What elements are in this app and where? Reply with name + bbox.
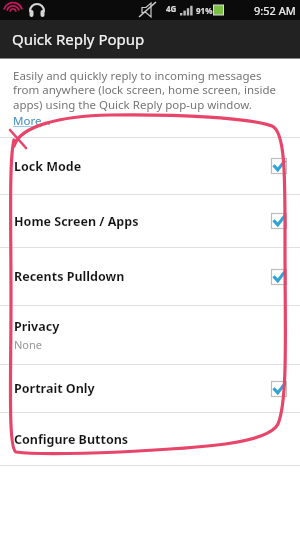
button[interactable]: Lock Mode checkbox: [271, 158, 287, 174]
button[interactable]: More...: [13, 113, 51, 129]
button[interactable]: Privacy: [0, 306, 300, 364]
staticText: Privacy: [14, 318, 60, 335]
button[interactable]: Portrait Only: [0, 365, 300, 412]
button[interactable]: Recents Pulldown: [0, 248, 300, 305]
staticText: Configure Buttons: [14, 431, 129, 448]
staticText: 9:52 AM: [254, 3, 296, 18]
staticText: 91%: [196, 5, 213, 16]
button[interactable]: Configure Buttons: [0, 413, 300, 465]
staticText: Easily and quickly reply to incoming mes…: [13, 68, 277, 113]
staticText: Quick Reply Popup: [12, 29, 145, 49]
button[interactable]: Recents Pulldown checkbox: [271, 269, 287, 285]
staticText: 4G: [166, 3, 177, 14]
button[interactable]: Lock Mode: [0, 138, 300, 194]
staticText: Portrait Only: [14, 380, 95, 397]
staticText: Home Screen / Apps: [14, 213, 139, 230]
staticText: Recents Pulldown: [14, 268, 125, 285]
staticText: None: [14, 337, 43, 352]
button[interactable]: Portrait Only checkbox: [271, 381, 287, 397]
button[interactable]: Home Screen / Apps: [0, 195, 300, 247]
staticText: Lock Mode: [14, 158, 82, 175]
staticText: More...: [13, 113, 51, 129]
button[interactable]: Home Screen / Apps checkbox: [271, 213, 287, 229]
